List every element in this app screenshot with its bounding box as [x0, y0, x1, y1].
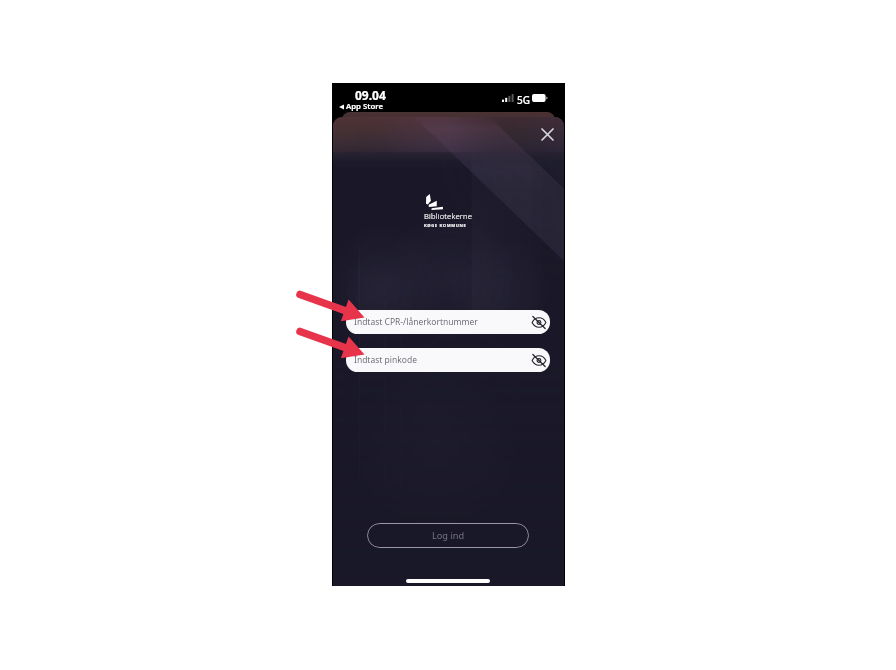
staticText: 09.04 [355, 87, 386, 103]
button[interactable]: Vis kode [529, 312, 549, 332]
button[interactable]: Log ind [367, 523, 529, 548]
staticText: Log ind [432, 529, 465, 542]
button[interactable]: Luk [533, 120, 562, 149]
staticText: Indtast pinkode [354, 354, 417, 366]
staticText: 5G [517, 93, 530, 107]
button[interactable]: Vis kode [529, 350, 549, 370]
staticText: Indtast CPR-/lånerkortnummer [354, 316, 478, 328]
button[interactable]: Indtast CPR-/lånerkortnummer [346, 310, 550, 334]
staticText: Bibliotekerne [424, 211, 473, 221]
staticText: KØGE KOMMUNE [424, 223, 467, 229]
staticText: App Store [346, 101, 384, 112]
button[interactable]: Indtast pinkode [346, 348, 550, 372]
